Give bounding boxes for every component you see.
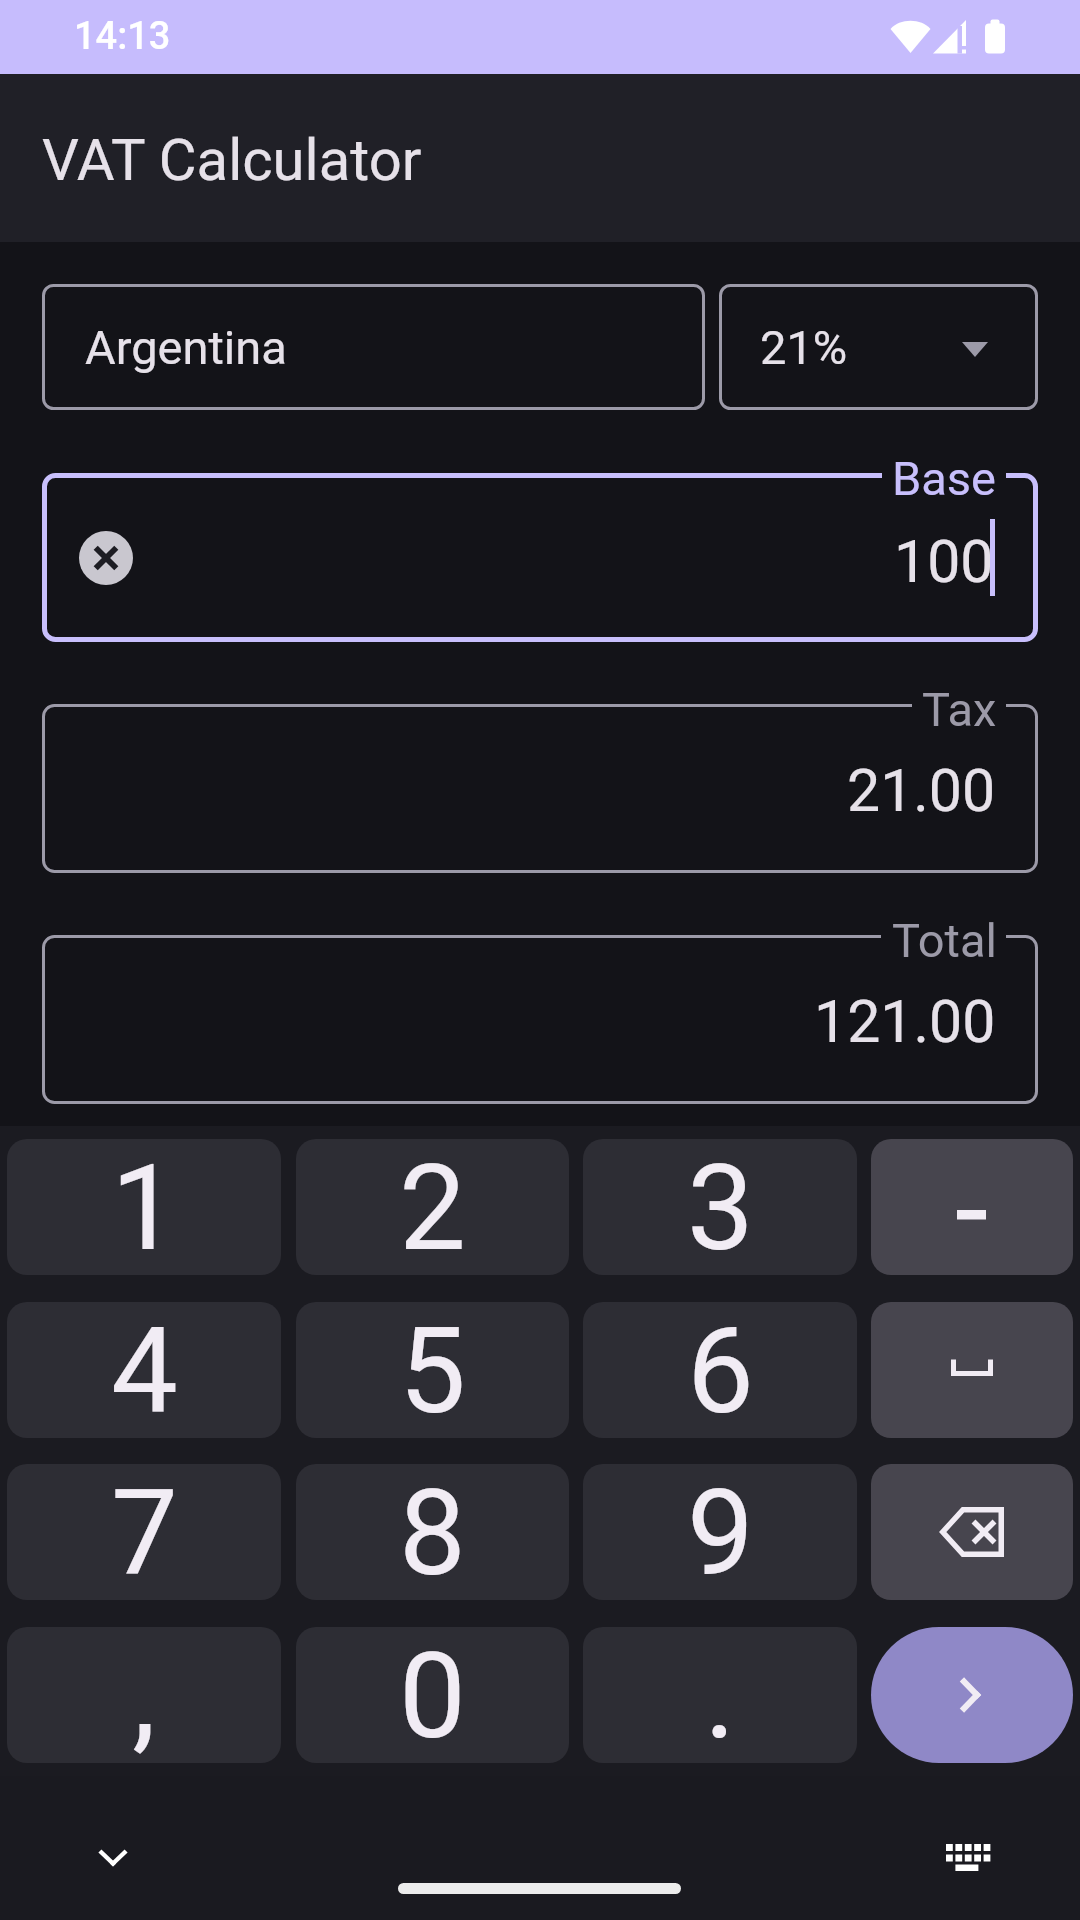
staticText: 100 bbox=[894, 527, 994, 596]
staticText: Tax bbox=[922, 682, 997, 737]
button[interactable]: Clear bbox=[79, 531, 133, 585]
button[interactable]: 0 bbox=[296, 1627, 569, 1763]
button[interactable]: 3 bbox=[583, 1139, 857, 1275]
staticText: 4 bbox=[111, 1302, 178, 1438]
staticText: . bbox=[704, 1627, 736, 1763]
button[interactable]: Base bbox=[42, 473, 1038, 642]
button[interactable]: 5 bbox=[296, 1302, 569, 1438]
staticText: 6 bbox=[687, 1302, 754, 1438]
button[interactable]: Hide keyboard bbox=[68, 1814, 158, 1904]
button[interactable]: Total bbox=[42, 935, 1038, 1104]
button[interactable]: 7 bbox=[7, 1464, 281, 1600]
button[interactable]: Argentina bbox=[42, 284, 705, 410]
button[interactable]: Space bbox=[871, 1302, 1073, 1438]
staticText: 5 bbox=[399, 1302, 466, 1438]
staticText: 2 bbox=[399, 1139, 466, 1275]
button[interactable]: , bbox=[7, 1627, 281, 1763]
button[interactable]: 9 bbox=[583, 1464, 857, 1600]
staticText: Base bbox=[892, 451, 997, 506]
staticText: 14:13 bbox=[74, 14, 171, 59]
button[interactable]: 21% bbox=[719, 284, 1038, 410]
button[interactable]: Enter bbox=[871, 1627, 1073, 1763]
staticText: 3 bbox=[687, 1139, 754, 1275]
staticText: 21% bbox=[760, 320, 848, 375]
staticText: 1 bbox=[111, 1139, 178, 1275]
button[interactable]: 8 bbox=[296, 1464, 569, 1600]
staticText: 7 bbox=[111, 1464, 178, 1600]
button[interactable]: 1 bbox=[7, 1139, 281, 1275]
button[interactable]: . bbox=[583, 1627, 857, 1763]
staticText: 0 bbox=[399, 1627, 466, 1763]
button[interactable]: Switch keyboard bbox=[922, 1812, 1012, 1902]
staticText: 9 bbox=[687, 1464, 754, 1600]
staticText: Argentina bbox=[85, 320, 287, 375]
staticText: Total bbox=[892, 913, 997, 968]
staticText: 21.00 bbox=[847, 756, 996, 825]
staticText: 8 bbox=[399, 1464, 466, 1600]
staticText: , bbox=[132, 1627, 156, 1763]
button[interactable]: Tax bbox=[42, 704, 1038, 873]
button[interactable]: 2 bbox=[296, 1139, 569, 1275]
button[interactable]: Minus bbox=[871, 1139, 1073, 1275]
staticText: 121.00 bbox=[814, 987, 996, 1056]
button[interactable]: 6 bbox=[583, 1302, 857, 1438]
button[interactable]: 4 bbox=[7, 1302, 281, 1438]
button[interactable]: Backspace bbox=[871, 1464, 1073, 1600]
staticText: VAT Calculator bbox=[42, 126, 422, 194]
